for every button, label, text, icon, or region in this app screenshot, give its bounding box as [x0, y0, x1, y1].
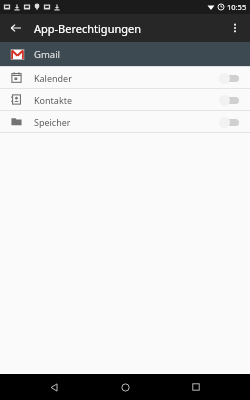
button[interactable]: Weitere Optionen: [224, 17, 246, 39]
button[interactable]: Kontakte: [0, 89, 250, 110]
button[interactable]: Zurück: [6, 18, 26, 38]
button[interactable]: Berechtigung umschalten: [219, 93, 241, 107]
staticText: Speicher: [34, 116, 71, 128]
staticText: 10:55: [227, 2, 247, 12]
button[interactable]: Zurück: [37, 374, 71, 400]
button[interactable]: Berechtigung umschalten: [219, 71, 241, 85]
button[interactable]: Berechtigung umschalten: [219, 115, 241, 129]
button[interactable]: Startbildschirm: [108, 374, 142, 400]
button[interactable]: Zuletzt verwendete Apps: [179, 374, 213, 400]
staticText: Kalender: [34, 72, 72, 84]
button[interactable]: Kalender: [0, 67, 250, 88]
button[interactable]: Gmail: [0, 42, 250, 66]
button[interactable]: Speicher: [0, 111, 250, 132]
staticText: Gmail: [34, 48, 61, 61]
staticText: App-Berechtigungen: [34, 21, 141, 36]
staticText: Kontakte: [34, 94, 73, 106]
